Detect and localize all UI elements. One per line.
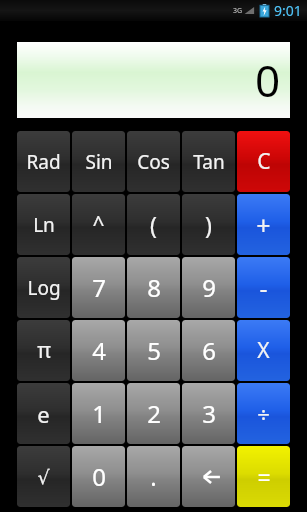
staticText: (: [150, 209, 157, 240]
staticText: 8: [147, 271, 161, 304]
button[interactable]: 3: [182, 383, 235, 444]
staticText: 6: [202, 334, 216, 367]
button[interactable]: 6: [182, 320, 235, 381]
staticText: 1: [92, 397, 106, 430]
staticText: .: [150, 460, 157, 493]
button[interactable]: 4: [72, 320, 125, 381]
button[interactable]: 0: [72, 446, 125, 507]
staticText: 7: [92, 271, 106, 304]
staticText: 2: [147, 397, 161, 430]
button[interactable]: C: [237, 131, 290, 192]
button[interactable]: 8: [127, 257, 180, 318]
button[interactable]: (: [127, 194, 180, 255]
staticText: ^: [92, 210, 105, 239]
staticText: -: [259, 271, 268, 305]
button[interactable]: X: [237, 320, 290, 381]
staticText: X: [257, 336, 270, 365]
staticText: 5: [147, 334, 161, 367]
staticText: +: [256, 208, 271, 242]
staticText: ÷: [257, 399, 270, 429]
staticText: 0: [92, 460, 106, 493]
button[interactable]: Cos: [127, 131, 180, 192]
staticText: 3: [202, 397, 216, 430]
staticText: =: [257, 461, 271, 492]
button[interactable]: Rad: [17, 131, 70, 192]
staticText: 9: [202, 271, 216, 304]
button[interactable]: Tan: [182, 131, 235, 192]
staticText: 0: [255, 50, 281, 110]
staticText: C: [257, 147, 271, 176]
button[interactable]: +: [237, 194, 290, 255]
button[interactable]: -: [237, 257, 290, 318]
staticText: π: [37, 336, 51, 365]
staticText: Cos: [137, 149, 170, 175]
button[interactable]: 5: [127, 320, 180, 381]
staticText: 9:01: [274, 1, 302, 20]
staticText: Log: [27, 275, 61, 301]
button[interactable]: √: [17, 446, 70, 507]
button[interactable]: Sin: [72, 131, 125, 192]
staticText: 3G: [233, 6, 243, 16]
button[interactable]: ÷: [237, 383, 290, 444]
staticText: 4: [92, 334, 106, 367]
staticText: √: [37, 466, 50, 488]
staticText: Ln: [33, 212, 55, 238]
staticText: ): [205, 209, 212, 240]
button[interactable]: 7: [72, 257, 125, 318]
button[interactable]: Ln: [17, 194, 70, 255]
button[interactable]: 9: [182, 257, 235, 318]
button[interactable]: ^: [72, 194, 125, 255]
staticText: Sin: [85, 149, 113, 175]
button[interactable]: π: [17, 320, 70, 381]
button[interactable]: ): [182, 194, 235, 255]
staticText: Tan: [193, 149, 225, 175]
staticText: Rad: [26, 149, 61, 175]
button[interactable]: 1: [72, 383, 125, 444]
button[interactable]: =: [237, 446, 290, 507]
button[interactable]: 2: [127, 383, 180, 444]
button[interactable]: e: [17, 383, 70, 444]
button[interactable]: .: [127, 446, 180, 507]
button[interactable]: Log: [17, 257, 70, 318]
button[interactable]: Backspace: [182, 446, 235, 507]
staticText: e: [37, 399, 50, 429]
